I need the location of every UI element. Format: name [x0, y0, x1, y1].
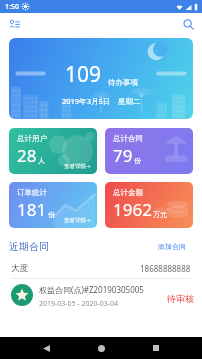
staticText: 28	[17, 144, 37, 167]
button[interactable]: Search	[180, 16, 196, 32]
button[interactable]: 109	[9, 38, 193, 119]
staticText: 近期合同	[9, 240, 49, 253]
staticText: 添加合同	[158, 242, 186, 251]
button[interactable]: Recents	[147, 339, 165, 357]
button[interactable]: Contacts	[6, 16, 22, 32]
staticText: 权益合同(点)#Z20190305005	[39, 284, 144, 295]
staticText: 109	[65, 60, 102, 89]
button[interactable]: 总计合同	[105, 128, 193, 174]
staticText: 待办事项	[108, 78, 138, 87]
staticText: 总计合同	[113, 134, 143, 143]
staticText: 79	[113, 144, 133, 167]
button[interactable]: 总计金额	[105, 182, 193, 228]
button[interactable]: Home	[92, 339, 110, 357]
staticText: 18688888888	[140, 263, 191, 274]
staticText: 查看详情→	[64, 217, 91, 224]
staticText: 查看详情→	[64, 163, 91, 170]
staticText: 2019-03-05 - 2020-03-04	[39, 299, 118, 309]
staticText: 份	[134, 156, 141, 165]
staticText: 181	[17, 198, 47, 221]
staticText: 订单统计	[17, 188, 47, 197]
button[interactable]: 添加合同	[151, 240, 193, 253]
button[interactable]: 大度	[0, 259, 202, 278]
button[interactable]: Back	[37, 339, 55, 357]
staticText: 待审核	[167, 293, 194, 304]
staticText: 1962	[113, 198, 152, 221]
staticText: 人	[38, 156, 45, 165]
staticText: 1:50	[5, 2, 19, 12]
staticText: 总计金额	[113, 188, 143, 197]
button[interactable]: 总计用户	[9, 128, 97, 174]
staticText: 大度	[11, 263, 28, 274]
staticText: 份	[48, 210, 55, 219]
staticText: 总计用户	[17, 134, 47, 143]
button[interactable]: 订单统计	[9, 182, 97, 228]
staticText: 2019年3月5日 星期二	[62, 96, 141, 106]
button[interactable]: 权益合同(点)#Z20190305005	[0, 279, 202, 309]
staticText: 万元	[153, 210, 167, 219]
